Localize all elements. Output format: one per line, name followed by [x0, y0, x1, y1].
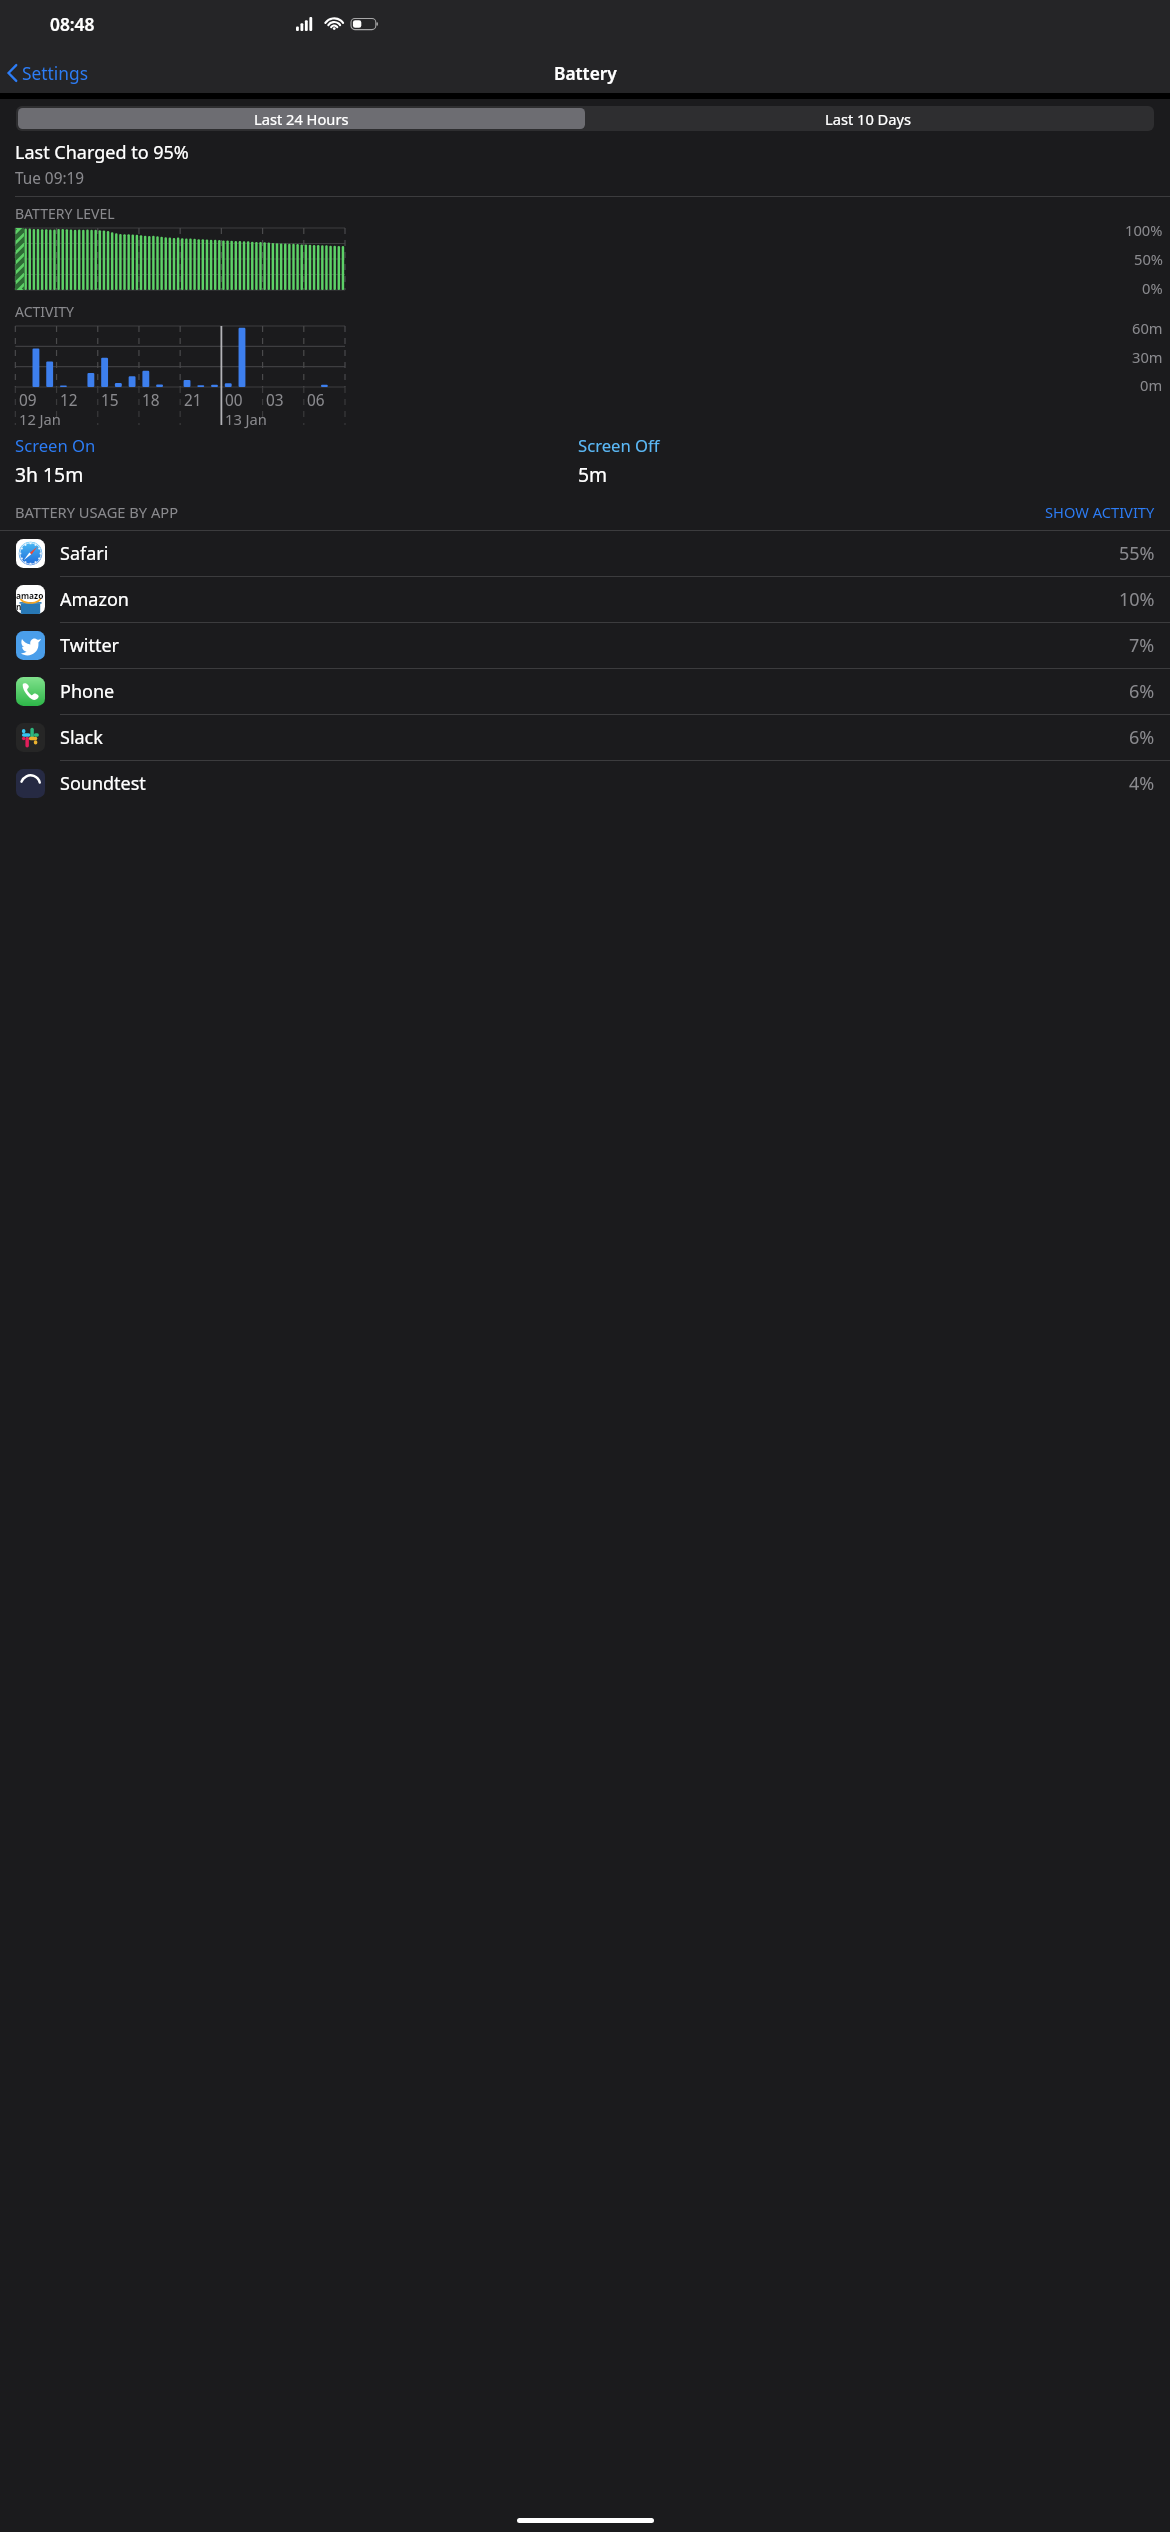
- staticText: 3h 15m: [15, 461, 84, 487]
- button[interactable]: Settings: [0, 56, 93, 90]
- staticText: Last Charged to 95%: [15, 140, 189, 165]
- staticText: BATTERY LEVEL: [15, 204, 115, 223]
- staticText: 21: [184, 390, 202, 411]
- other: Soundtest: [16, 769, 45, 798]
- staticText: Tue 09:19: [15, 168, 85, 189]
- staticText: 06: [307, 390, 325, 411]
- staticText: 100%: [1125, 220, 1163, 240]
- staticText: 55%: [1119, 541, 1155, 566]
- button[interactable]: SHOW ACTIVITY: [1045, 502, 1155, 522]
- button[interactable]: Soundtest: [16, 761, 1155, 806]
- staticText: 15: [101, 390, 119, 411]
- button[interactable]: phone: [0, 669, 1170, 715]
- button[interactable]: amazon: [0, 577, 1170, 623]
- other: slack: [16, 723, 45, 752]
- staticText: Last 10 Days: [825, 109, 912, 129]
- other: twitter: [16, 631, 45, 660]
- button[interactable]: slack: [0, 715, 1170, 761]
- staticText: Settings: [22, 61, 88, 85]
- staticText: SHOW ACTIVITY: [1045, 502, 1155, 522]
- staticText: 0m: [1140, 375, 1163, 395]
- staticText: Twitter: [60, 633, 120, 658]
- staticText: Last 24 Hours: [254, 109, 349, 129]
- staticText: 7%: [1129, 633, 1155, 658]
- staticText: 6%: [1129, 725, 1155, 750]
- staticText: Slack: [60, 725, 103, 750]
- staticText: 12 Jan: [19, 409, 61, 429]
- button[interactable]: safari: [0, 531, 1170, 577]
- staticText: 09: [19, 390, 37, 411]
- button[interactable]: Last 24 Hours: [18, 108, 585, 129]
- staticText: 13 Jan: [225, 409, 267, 429]
- button[interactable]: Last 10 Days: [585, 108, 1152, 129]
- staticText: 08:48: [50, 12, 95, 36]
- other: safari: [16, 539, 45, 568]
- staticText: Screen Off: [578, 434, 660, 457]
- staticText: 50%: [1134, 249, 1163, 269]
- staticText: 60m: [1132, 318, 1163, 338]
- button[interactable]: twitter: [0, 623, 1170, 669]
- staticText: Screen On: [15, 434, 96, 457]
- other: amazon: [16, 585, 45, 614]
- staticText: 10%: [1119, 587, 1155, 612]
- staticText: 18: [142, 390, 160, 411]
- staticText: Amazon: [60, 587, 129, 612]
- staticText: 12: [60, 390, 78, 411]
- staticText: 6%: [1129, 679, 1155, 704]
- staticText: Safari: [60, 541, 109, 566]
- staticText: amazon: [16, 590, 45, 612]
- staticText: Battery: [554, 61, 617, 85]
- staticText: ACTIVITY: [15, 302, 74, 321]
- staticText: 0%: [1142, 278, 1163, 298]
- staticText: 30m: [1132, 347, 1163, 367]
- other: phone: [16, 677, 45, 706]
- staticText: Phone: [60, 679, 115, 704]
- staticText: 5m: [578, 461, 608, 487]
- staticText: 03: [266, 390, 284, 411]
- staticText: BATTERY USAGE BY APP: [15, 502, 179, 522]
- staticText: 4%: [1129, 771, 1155, 796]
- staticText: 00: [225, 390, 243, 411]
- staticText: Soundtest: [60, 771, 146, 796]
